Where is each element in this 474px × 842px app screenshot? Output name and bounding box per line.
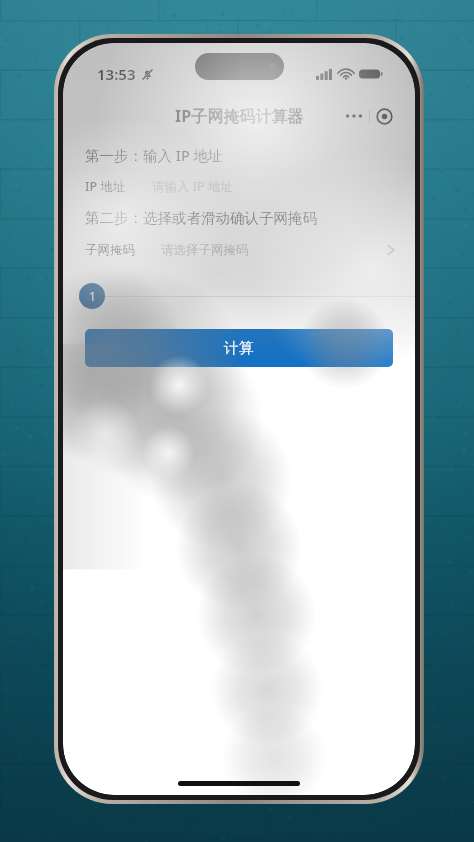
staticText: 1: [89, 288, 96, 304]
staticText: 第一步：输入 IP 地址: [85, 145, 223, 165]
staticText: 请选择子网掩码: [161, 242, 249, 258]
button[interactable]: More options and close: [344, 103, 393, 129]
button[interactable]: IP 地址: [63, 171, 415, 202]
button[interactable]: Subnet mask slider, value 1: [63, 281, 415, 311]
staticText: 计算: [224, 339, 254, 358]
staticText: 请输入 IP 地址: [152, 178, 233, 195]
button[interactable]: 计算: [85, 329, 393, 367]
staticText: 子网掩码: [85, 242, 135, 258]
staticText: 13:53: [97, 64, 136, 84]
staticText: 第二步：选择或者滑动确认子网掩码: [85, 209, 317, 227]
staticText: IP 地址: [85, 178, 126, 195]
button[interactable]: 子网掩码: [63, 234, 415, 265]
staticText: IP子网掩码计算器: [175, 105, 304, 127]
